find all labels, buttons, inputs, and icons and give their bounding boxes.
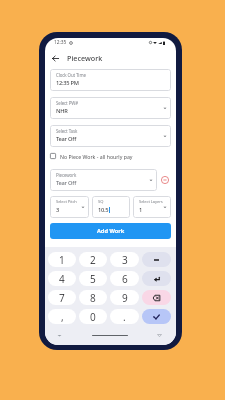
button[interactable]: 8 [79, 290, 107, 305]
button[interactable]: Minus [142, 252, 171, 267]
button[interactable]: 5 [79, 271, 107, 286]
button[interactable]: Clock Out Time [50, 69, 171, 91]
staticText: 4 [59, 272, 65, 286]
staticText: Select Layers [139, 199, 163, 205]
button[interactable]: 1 [48, 252, 76, 267]
staticText: 2 [90, 253, 96, 267]
button[interactable]: 7 [48, 290, 76, 305]
staticText: Select PW# [56, 100, 78, 106]
button[interactable]: Select Pitch [50, 196, 89, 218]
button[interactable]: , [48, 309, 76, 324]
staticText: 3 [56, 206, 60, 214]
staticText: Clock Out Time [56, 72, 86, 78]
button[interactable]: 4 [48, 271, 76, 286]
staticText: 9 [122, 291, 128, 305]
staticText: Piecework [56, 172, 77, 178]
staticText: 12:35 PM [56, 79, 79, 87]
staticText: NHR [56, 107, 68, 115]
staticText: 8 [90, 291, 96, 305]
staticText: 1 [139, 206, 143, 214]
staticText: 6 [122, 272, 128, 286]
staticText: 7 [59, 291, 65, 305]
button[interactable]: . [110, 309, 139, 324]
staticText: . [123, 310, 126, 324]
button[interactable]: 3 [110, 252, 139, 267]
staticText: Add Work [97, 227, 125, 235]
staticText: 1 [59, 253, 65, 267]
staticText: , [61, 310, 64, 324]
button[interactable]: 9 [110, 290, 139, 305]
button[interactable]: Done [142, 309, 171, 324]
staticText: 0 [90, 310, 96, 324]
staticText: No Piece Work - all hourly pay [60, 153, 133, 160]
button[interactable]: Piecework [50, 169, 157, 191]
staticText: SQ [98, 199, 104, 205]
button[interactable]: 6 [110, 271, 139, 286]
staticText: 10.5 [98, 206, 109, 214]
button[interactable]: 0 [79, 309, 107, 324]
staticText: Select Task [56, 128, 78, 134]
staticText: Tear Off [56, 179, 76, 187]
button[interactable]: No Piece Work - all hourly pay [50, 152, 171, 160]
staticText: 12:35 [54, 39, 67, 46]
staticText: Piecework [67, 53, 103, 63]
button[interactable]: Select PW# [50, 97, 171, 119]
staticText: Tear Off [56, 135, 76, 143]
button[interactable]: Backspace [142, 290, 171, 305]
staticText: 3 [122, 253, 128, 267]
button[interactable]: 2 [79, 252, 107, 267]
button[interactable]: Select Task [50, 125, 171, 147]
button[interactable]: Select Layers [133, 196, 171, 218]
button[interactable]: Remove [159, 174, 171, 186]
staticText: 5 [90, 272, 96, 286]
button[interactable]: Next field [142, 271, 171, 286]
button[interactable]: SQ [92, 196, 130, 218]
staticText: Select Pitch [56, 199, 77, 205]
button[interactable]: Add Work [50, 223, 171, 239]
button[interactable]: Back [48, 51, 62, 65]
